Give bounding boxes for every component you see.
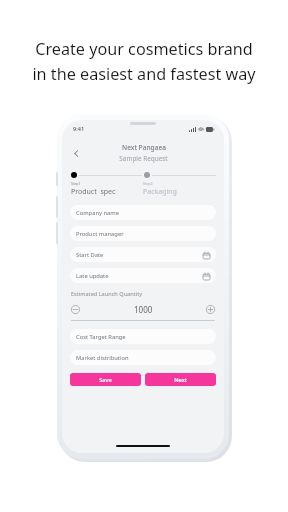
- button[interactable]: Market distribution: [70, 350, 216, 365]
- staticText: Sample Request: [119, 154, 168, 163]
- staticText: Next Pangaea: [122, 143, 166, 152]
- staticText: 9:41: [73, 125, 85, 133]
- staticText: Step2: [143, 181, 153, 186]
- button[interactable]: Start Date: [70, 247, 216, 262]
- button[interactable]: Increase quantity: [205, 304, 216, 315]
- button[interactable]: Back: [69, 146, 83, 160]
- staticText: in the easiest and fastest way: [32, 63, 256, 85]
- button[interactable]: Next: [145, 373, 216, 386]
- staticText: Next: [174, 376, 187, 384]
- staticText: Estimated Launch Quantity: [71, 290, 143, 298]
- staticText: Step1: [71, 181, 81, 186]
- staticText: Create your cosmetics brand: [35, 38, 253, 60]
- staticText: Save: [99, 376, 112, 384]
- staticText: Product manager: [76, 230, 124, 238]
- button[interactable]: Company name: [70, 205, 216, 220]
- staticText: Packaging: [143, 187, 177, 197]
- button[interactable]: Product manager: [70, 226, 216, 241]
- button[interactable]: Decrease quantity: [70, 304, 81, 315]
- staticText: Start Date: [76, 251, 104, 259]
- button[interactable]: Save: [70, 373, 141, 386]
- staticText: Company name: [76, 209, 119, 217]
- staticText: 1000: [134, 304, 153, 315]
- staticText: Market distribution: [76, 354, 129, 362]
- staticText: Cost Target Range: [76, 333, 126, 341]
- staticText: Late update: [76, 272, 109, 280]
- button[interactable]: Late update: [70, 268, 216, 283]
- staticText: Product spec: [71, 187, 116, 197]
- button[interactable]: Cost Target Range: [70, 329, 216, 344]
